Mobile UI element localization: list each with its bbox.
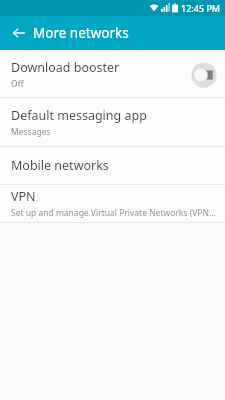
staticText: Set up and manage Virtual Private Networ… [11, 207, 217, 219]
staticText: VPN [11, 188, 36, 205]
staticText: Messages [11, 126, 51, 138]
staticText: Default messaging app [11, 107, 147, 124]
button[interactable]: Default messaging app [0, 98, 225, 146]
button[interactable]: Mobile networks [0, 147, 225, 184]
staticText: More networks [33, 24, 129, 42]
staticText: Mobile networks [11, 157, 109, 174]
button[interactable]: Download booster toggle [189, 60, 219, 90]
staticText: Off [11, 78, 24, 90]
staticText: 12:45 PM [181, 2, 221, 14]
button[interactable]: Download booster [0, 52, 225, 97]
button[interactable]: VPN [0, 185, 225, 222]
staticText: Download booster [11, 59, 120, 76]
button[interactable]: Back [7, 21, 31, 45]
